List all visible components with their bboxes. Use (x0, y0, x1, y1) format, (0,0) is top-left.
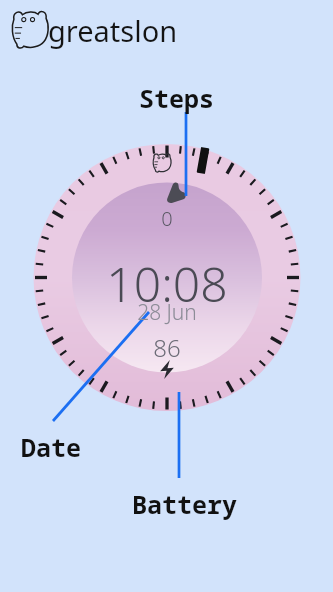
button[interactable]: greatslon (6, 8, 171, 50)
staticText: 0 (82, 205, 252, 234)
staticText: Battery (132, 487, 238, 521)
staticText: Steps (139, 81, 215, 115)
button[interactable]: Steps (139, 81, 215, 115)
staticText: Date (21, 430, 82, 464)
staticText: 28 Jun (82, 298, 252, 328)
staticText: 10:08 (82, 251, 252, 321)
staticText: 86 (82, 331, 252, 366)
button[interactable]: Date (21, 430, 82, 464)
button[interactable]: Battery (132, 487, 238, 521)
staticText: greatslon (48, 11, 178, 50)
